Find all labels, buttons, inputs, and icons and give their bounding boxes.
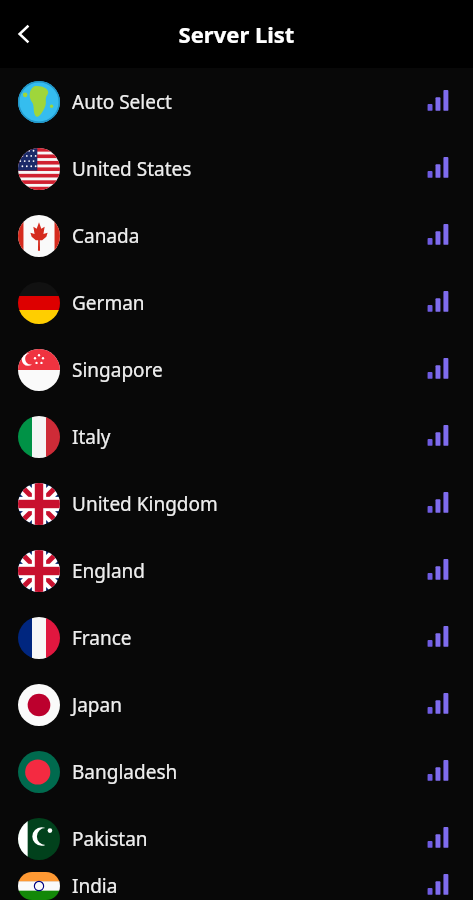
button[interactable]: United States — [0, 135, 473, 202]
other: Signal strength — [426, 424, 452, 450]
button[interactable]: German — [0, 269, 473, 336]
button[interactable]: Pakistan — [0, 805, 473, 872]
button[interactable]: United Kingdom — [0, 470, 473, 537]
other: Signal strength — [426, 558, 452, 584]
button[interactable]: Bangladesh — [0, 738, 473, 805]
staticText: Italy — [72, 424, 426, 450]
button[interactable]: Back — [2, 12, 46, 56]
other: Signal strength — [426, 89, 452, 115]
button[interactable]: Japan — [0, 671, 473, 738]
staticText: Server List — [0, 19, 473, 49]
button[interactable]: Auto Select — [0, 68, 473, 135]
other: Signal strength — [426, 223, 452, 249]
other: Signal strength — [426, 826, 452, 852]
staticText: Bangladesh — [72, 759, 426, 785]
button[interactable]: Singapore — [0, 336, 473, 403]
staticText: India — [72, 873, 426, 899]
other: Signal strength — [426, 625, 452, 651]
other: Signal strength — [426, 873, 452, 899]
button[interactable]: England — [0, 537, 473, 604]
button[interactable]: India — [0, 872, 473, 900]
staticText: England — [72, 558, 426, 584]
other: Signal strength — [426, 357, 452, 383]
other: Signal strength — [426, 692, 452, 718]
other: Signal strength — [426, 156, 452, 182]
other: Signal strength — [426, 290, 452, 316]
button[interactable]: France — [0, 604, 473, 671]
staticText: United Kingdom — [72, 491, 426, 517]
staticText: Auto Select — [72, 89, 426, 115]
other: Signal strength — [426, 759, 452, 785]
button[interactable]: Canada — [0, 202, 473, 269]
staticText: United States — [72, 156, 426, 182]
staticText: Pakistan — [72, 826, 426, 852]
staticText: France — [72, 625, 426, 651]
button[interactable]: Italy — [0, 403, 473, 470]
other: Signal strength — [426, 491, 452, 517]
staticText: Canada — [72, 223, 426, 249]
staticText: Japan — [72, 692, 426, 718]
staticText: German — [72, 290, 426, 316]
staticText: Singapore — [72, 357, 426, 383]
